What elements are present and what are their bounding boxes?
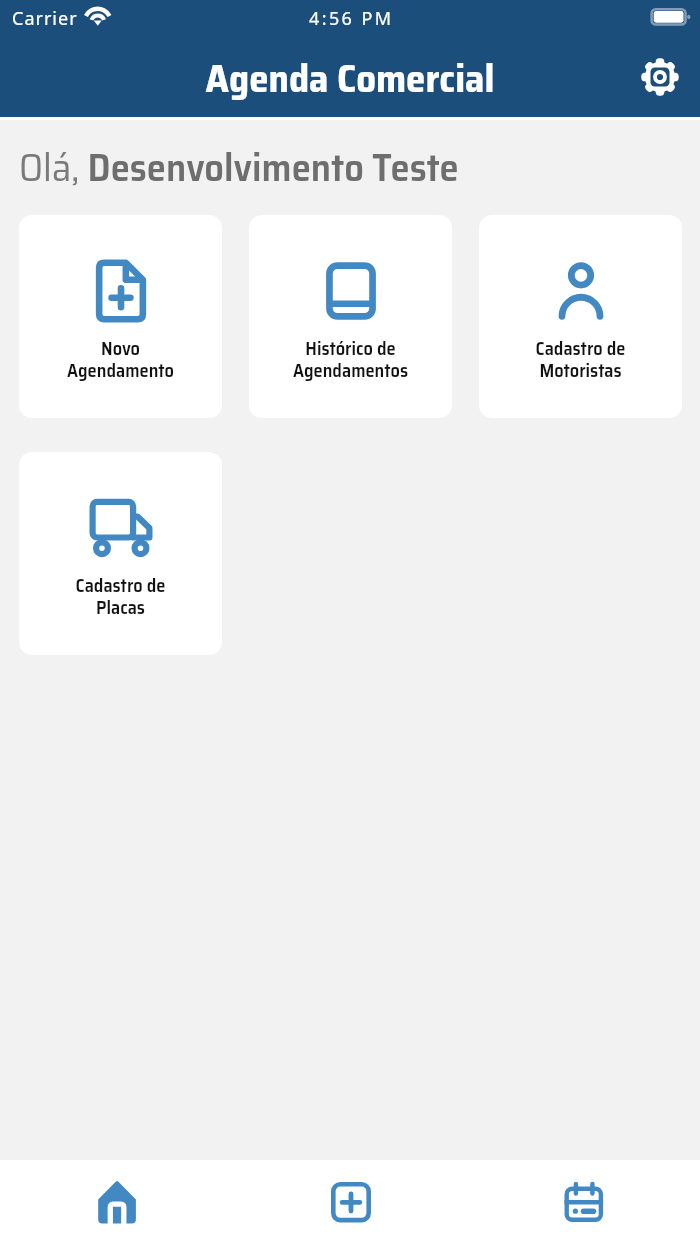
button[interactable]: Histórico de Agendamentos [249, 215, 452, 418]
staticText: Olá, Desenvolvimento Teste [19, 137, 459, 198]
button[interactable]: Appointments calendar [467, 1160, 700, 1244]
button[interactable]: Cadastro de Motoristas [479, 215, 682, 418]
button[interactable]: New appointment [234, 1160, 467, 1244]
button[interactable]: Home [0, 1160, 234, 1244]
staticText: Cadastro de Motoristas [479, 334, 682, 385]
staticText: 4:56 PM [309, 6, 394, 31]
staticText: Cadastro de Placas [19, 571, 222, 622]
staticText: Carrier [12, 6, 78, 31]
button[interactable]: Settings [637, 54, 683, 100]
staticText: Agenda Comercial [0, 48, 700, 109]
button[interactable]: Novo Agendamento [19, 215, 222, 418]
button[interactable]: Cadastro de Placas [19, 452, 222, 655]
staticText: Histórico de Agendamentos [249, 334, 452, 385]
staticText: Novo Agendamento [19, 334, 222, 385]
